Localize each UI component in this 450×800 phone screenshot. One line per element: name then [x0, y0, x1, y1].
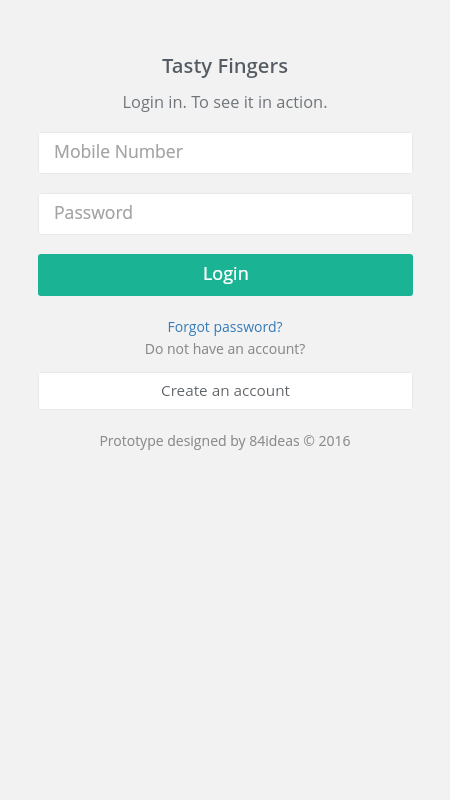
button[interactable]: Mobile Number [38, 132, 413, 174]
staticText: Password [54, 200, 134, 224]
button[interactable]: Create an account [38, 372, 413, 410]
button[interactable]: Forgot password? [167, 317, 283, 336]
button[interactable]: Password [38, 193, 413, 235]
staticText: Tasty Fingers [0, 51, 450, 79]
staticText: Login in. To see it in action. [0, 90, 450, 112]
staticText: Prototype designed by 84ideas © 2016 [0, 431, 450, 450]
staticText: Mobile Number [54, 139, 183, 163]
button[interactable]: Login [38, 254, 413, 296]
staticText: Create an account [161, 380, 290, 401]
staticText: Forgot password? [167, 317, 283, 336]
staticText: Login [203, 261, 249, 286]
staticText: Do not have an account? [0, 339, 450, 358]
